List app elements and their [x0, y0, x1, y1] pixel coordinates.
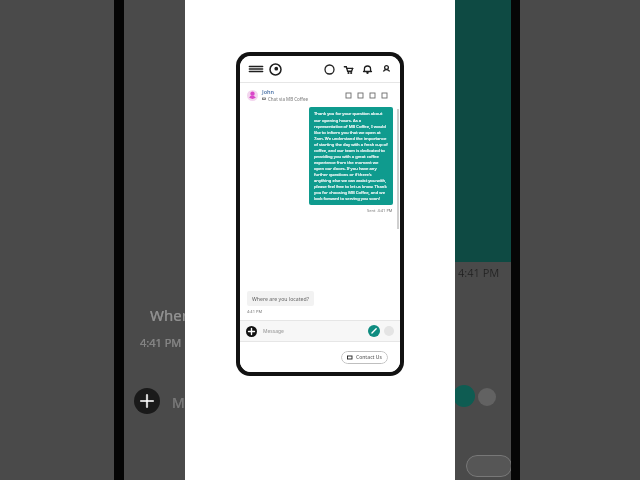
staticText: Sent 4:41 PM	[367, 208, 393, 213]
staticText: M	[172, 393, 185, 412]
button[interactable]: Info	[384, 326, 394, 336]
staticText: Contact Us	[356, 354, 382, 361]
button[interactable]: Notifications	[362, 64, 373, 75]
staticText: John	[262, 88, 275, 95]
button[interactable]: Star	[357, 92, 364, 99]
staticText: 4:41 PM	[458, 265, 500, 280]
button[interactable]: Delete	[381, 92, 388, 99]
staticText: Chat via MB Coffee	[268, 96, 308, 102]
button[interactable]: Contact Us	[341, 351, 388, 364]
staticText: 4:41 PM	[140, 335, 182, 350]
button[interactable]: Archive	[369, 92, 376, 99]
button[interactable]: Help	[324, 64, 335, 75]
button[interactable]: Send	[368, 325, 380, 337]
button[interactable]: Account	[381, 64, 392, 75]
staticText: Wher	[150, 305, 188, 325]
button[interactable]: Logo	[269, 63, 282, 76]
button[interactable]: Cart	[343, 64, 354, 75]
button[interactable]: Menu	[248, 61, 264, 77]
staticText: 4:41 PM	[247, 309, 263, 314]
staticText: Thank you for your question about our op…	[314, 111, 388, 201]
button[interactable]: Flag	[345, 92, 352, 99]
staticText: Message	[263, 328, 284, 335]
button[interactable]: Add attachment	[246, 326, 257, 337]
staticText: Where are you located?	[252, 295, 309, 302]
